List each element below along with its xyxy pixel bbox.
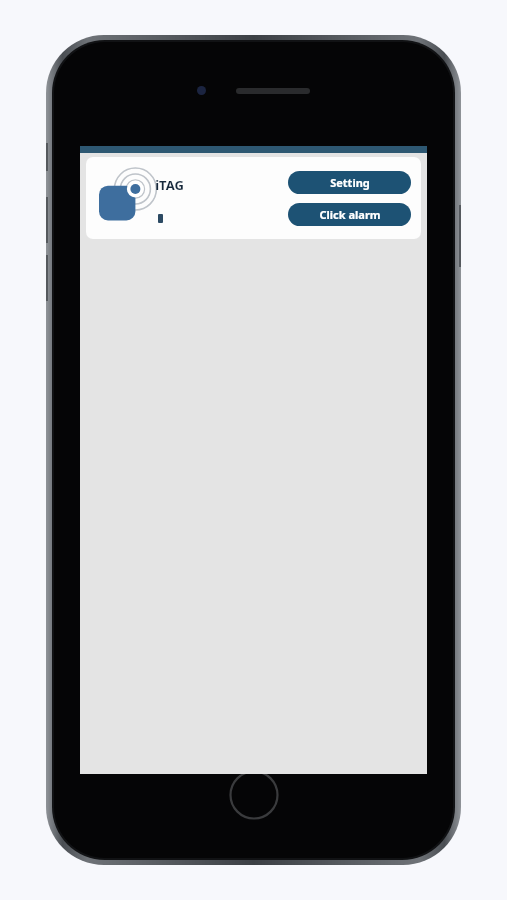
staticText: Setting — [330, 175, 370, 190]
staticText: iTAG — [155, 176, 184, 194]
button[interactable]: Click alarm — [288, 203, 411, 226]
button[interactable]: Setting — [288, 171, 411, 194]
staticText: Click alarm — [319, 207, 381, 222]
